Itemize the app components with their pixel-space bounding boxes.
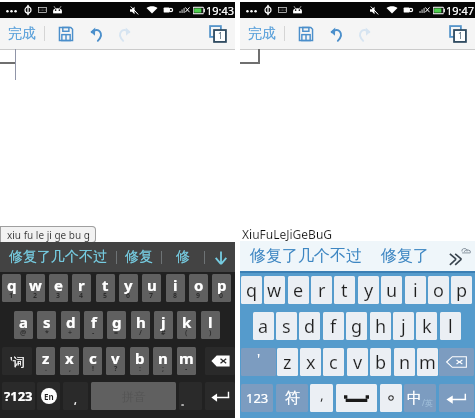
button[interactable]: More candidates xyxy=(206,242,235,272)
button[interactable]: Space xyxy=(336,384,377,412)
staticText: 3 xyxy=(56,291,61,301)
button[interactable]: Backspace xyxy=(205,347,235,375)
button[interactable]: a xyxy=(14,311,33,339)
button[interactable]: 中 xyxy=(404,384,436,412)
button[interactable]: Enter xyxy=(205,382,235,410)
button[interactable]: x xyxy=(300,348,321,376)
button[interactable]: s xyxy=(276,312,297,340)
button[interactable]: z xyxy=(36,347,55,375)
button[interactable]: Save xyxy=(290,18,321,49)
button[interactable]: Tabs xyxy=(200,18,235,49)
button[interactable]: g xyxy=(346,312,367,340)
button[interactable]: e xyxy=(288,276,309,304)
button[interactable]: h xyxy=(131,311,150,339)
button[interactable]: 修复了 xyxy=(381,246,429,266)
button[interactable]: k xyxy=(416,312,437,340)
button[interactable]: o xyxy=(428,276,449,304)
button[interactable]: w xyxy=(264,276,285,304)
button[interactable]: k xyxy=(177,311,196,339)
button[interactable]: i xyxy=(405,276,426,304)
button[interactable]: z xyxy=(277,348,298,376)
button[interactable]: , xyxy=(63,382,88,410)
staticText: v xyxy=(111,348,120,368)
button[interactable]: x xyxy=(60,347,79,375)
button[interactable]: g xyxy=(107,311,126,339)
button[interactable]: v xyxy=(106,347,125,375)
staticText: f xyxy=(330,314,337,339)
button[interactable]: q xyxy=(2,274,21,302)
button[interactable]: 123 xyxy=(241,384,273,412)
button[interactable]: 修复了几个不过 xyxy=(9,248,107,266)
button[interactable]: Undo xyxy=(321,18,350,49)
button[interactable]: Undo xyxy=(81,18,110,49)
button[interactable]: More candidates xyxy=(442,241,475,271)
button[interactable]: s xyxy=(37,311,56,339)
button[interactable]: Tabs xyxy=(440,18,475,49)
button[interactable]: n xyxy=(153,347,172,375)
button[interactable]: p xyxy=(212,274,231,302)
button[interactable]: v xyxy=(347,348,368,376)
button[interactable]: r xyxy=(72,274,91,302)
button[interactable]: e xyxy=(49,274,68,302)
button[interactable]: u xyxy=(381,276,402,304)
button[interactable]: l xyxy=(440,312,461,340)
button[interactable]: h xyxy=(370,312,391,340)
staticText: v xyxy=(353,350,363,375)
button[interactable]: w xyxy=(26,274,45,302)
button[interactable]: n xyxy=(394,348,415,376)
staticText: ' xyxy=(257,349,261,368)
button[interactable]: 符 xyxy=(276,384,308,412)
button[interactable]: j xyxy=(154,311,173,339)
button[interactable]: Enter xyxy=(439,384,474,412)
staticText: x xyxy=(65,348,74,368)
button[interactable]: Save xyxy=(50,18,81,49)
button[interactable]: o xyxy=(189,274,208,302)
button[interactable]: b xyxy=(130,347,149,375)
button[interactable]: l xyxy=(201,311,220,339)
staticText: - xyxy=(92,328,95,338)
button[interactable]: ?123 xyxy=(2,382,35,410)
button[interactable]: y xyxy=(119,274,138,302)
button[interactable]: p xyxy=(451,276,472,304)
staticText: xiu fu le ji ge bu g xyxy=(7,228,90,242)
button[interactable]: t xyxy=(334,276,355,304)
button[interactable]: j xyxy=(393,312,414,340)
button[interactable]: d xyxy=(61,311,80,339)
staticText: 拼音 xyxy=(122,389,146,404)
button[interactable]: Backspace xyxy=(439,348,474,376)
button[interactable]: f xyxy=(323,312,344,340)
button[interactable] xyxy=(380,384,402,412)
button[interactable]: i xyxy=(166,274,185,302)
button[interactable]: En xyxy=(37,382,60,410)
button[interactable]: Redo xyxy=(110,18,140,49)
button[interactable]: , xyxy=(310,384,333,412)
button[interactable]: ' xyxy=(241,348,276,376)
button[interactable]: u xyxy=(142,274,161,302)
button[interactable]: f xyxy=(84,311,103,339)
staticText: * xyxy=(45,328,49,338)
button[interactable]: r xyxy=(311,276,332,304)
button[interactable]: q xyxy=(241,276,262,304)
button[interactable]: 。 xyxy=(179,382,202,410)
button[interactable]: t xyxy=(96,274,115,302)
staticText: 19:43 xyxy=(206,3,235,18)
button[interactable]: m xyxy=(417,348,438,376)
button[interactable]: Redo xyxy=(350,18,380,49)
button[interactable]: 修复了几个不过 xyxy=(250,246,362,266)
staticText: ! xyxy=(92,364,94,374)
button[interactable]: y xyxy=(358,276,379,304)
button[interactable]: 修复 xyxy=(125,248,153,266)
button[interactable]: m xyxy=(177,347,196,375)
button[interactable]: 完成 xyxy=(240,18,284,49)
button[interactable]: '词 xyxy=(2,347,32,375)
button[interactable]: d xyxy=(299,312,320,340)
button[interactable]: c xyxy=(323,348,344,376)
staticText: i xyxy=(413,278,418,303)
button[interactable]: 完成 xyxy=(0,18,44,49)
button[interactable]: a xyxy=(253,312,274,340)
button[interactable]: 修 xyxy=(176,248,190,266)
button[interactable]: b xyxy=(370,348,391,376)
staticText: 123 xyxy=(246,389,269,407)
button[interactable]: c xyxy=(83,347,102,375)
